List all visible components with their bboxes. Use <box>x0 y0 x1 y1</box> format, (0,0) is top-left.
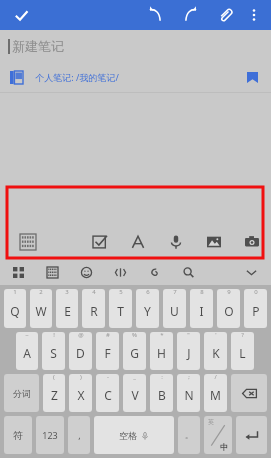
staticText: Y <box>144 303 151 319</box>
button[interactable]: 4 <box>82 289 105 328</box>
button[interactable]: , <box>68 416 90 454</box>
button[interactable]: Save <box>8 2 34 28</box>
button[interactable]: # <box>96 332 119 370</box>
staticText: W <box>35 303 47 319</box>
staticText: A <box>23 345 31 361</box>
staticText: ; <box>188 374 190 381</box>
button[interactable]: @ <box>69 332 92 370</box>
staticText: 3 <box>65 289 69 296</box>
staticText: 123 <box>42 429 58 441</box>
button[interactable]: Backspace <box>231 374 267 412</box>
staticText: - <box>107 374 109 381</box>
button[interactable]: Camera <box>241 231 263 253</box>
button[interactable]: Hide keyboard <box>241 262 261 282</box>
staticText: F <box>104 345 111 361</box>
staticText: M <box>210 387 221 403</box>
button[interactable]: Attach <box>211 1 239 29</box>
button[interactable]: Search <box>178 262 198 282</box>
staticText: _ <box>133 374 136 381</box>
staticText: ! <box>53 332 55 339</box>
button[interactable]: ; <box>177 374 200 412</box>
staticText: U <box>170 303 179 319</box>
button[interactable]: Cursor control <box>110 262 130 282</box>
button[interactable]: Voice record <box>165 231 187 253</box>
button[interactable]: * <box>150 332 173 370</box>
button[interactable]: Insert image <box>203 231 225 253</box>
staticText: 0 <box>254 289 258 296</box>
button[interactable]: Redo <box>177 1 205 29</box>
staticText: 7 <box>173 289 177 296</box>
staticText: E <box>64 303 71 319</box>
button[interactable]: Undo <box>141 1 169 29</box>
staticText: R <box>90 303 98 319</box>
button[interactable]: 123 <box>36 416 64 454</box>
staticText: @ <box>78 332 84 339</box>
staticText: X <box>77 387 85 403</box>
staticText: 英 <box>208 418 214 426</box>
staticText: I <box>199 303 204 319</box>
button[interactable]: 0 <box>244 289 267 328</box>
staticText: S <box>50 345 57 361</box>
button[interactable]: 英 <box>204 416 232 454</box>
button[interactable]: _ <box>123 374 146 412</box>
button[interactable]: 6 <box>136 289 159 328</box>
button[interactable]: 分词 <box>4 374 39 412</box>
staticText: 1 <box>13 289 17 296</box>
staticText: B <box>158 387 166 403</box>
staticText: 符 <box>13 429 23 442</box>
staticText: L <box>239 345 246 361</box>
button[interactable]: 9 <box>217 289 240 328</box>
button[interactable]: 1 <box>4 289 26 328</box>
button[interactable]: 符 <box>4 416 32 454</box>
button[interactable]: 2 <box>30 289 52 328</box>
button[interactable]: Keyboard layout <box>42 262 62 282</box>
button[interactable]: ' <box>204 332 227 370</box>
staticText: ) <box>80 374 82 381</box>
button[interactable]: 。 <box>178 416 200 454</box>
button[interactable]: Enter <box>236 416 267 454</box>
button[interactable]: 空格 <box>94 416 174 454</box>
button[interactable]: 8 <box>190 289 213 328</box>
staticText: ~ <box>25 332 29 339</box>
button[interactable]: Link <box>144 262 164 282</box>
staticText: ? <box>241 332 244 339</box>
button[interactable]: ) <box>69 374 92 412</box>
staticText: , <box>78 429 81 441</box>
staticText: " <box>187 332 190 339</box>
staticText: / <box>214 374 217 381</box>
button[interactable]: Checklist <box>89 231 111 253</box>
staticText: P <box>252 303 260 319</box>
staticText: Z <box>51 387 58 403</box>
button[interactable]: 个人笔记: /我的笔记/ <box>0 66 271 88</box>
button[interactable]: - <box>96 374 119 412</box>
staticText: C <box>104 387 112 403</box>
button[interactable]: 7 <box>163 289 186 328</box>
button[interactable]: : <box>150 374 173 412</box>
staticText: O <box>224 303 234 319</box>
button[interactable]: / <box>204 374 227 412</box>
staticText: J <box>187 345 191 361</box>
staticText: 6 <box>146 289 150 296</box>
staticText: % <box>132 332 137 339</box>
button[interactable]: Bookmark <box>243 68 261 86</box>
staticText: 8 <box>200 289 204 296</box>
button[interactable]: Keyboard <box>16 230 40 254</box>
staticText: D <box>76 345 85 361</box>
button[interactable]: 3 <box>56 289 78 328</box>
button[interactable]: ! <box>42 332 65 370</box>
button[interactable]: More options <box>241 2 267 28</box>
button[interactable]: Format text <box>127 231 149 253</box>
button[interactable]: 5 <box>109 289 132 328</box>
staticText: V <box>131 387 139 403</box>
staticText: N <box>184 387 194 403</box>
button[interactable]: Apps <box>8 262 28 282</box>
button[interactable]: ? <box>231 332 254 370</box>
button[interactable]: " <box>177 332 200 370</box>
staticText: * <box>160 332 164 339</box>
staticText: 。 <box>185 430 193 440</box>
button[interactable]: ( <box>43 374 65 412</box>
button[interactable]: % <box>123 332 146 370</box>
button[interactable]: Emoji <box>76 262 96 282</box>
staticText: ( <box>53 374 55 381</box>
button[interactable]: ~ <box>16 332 38 370</box>
